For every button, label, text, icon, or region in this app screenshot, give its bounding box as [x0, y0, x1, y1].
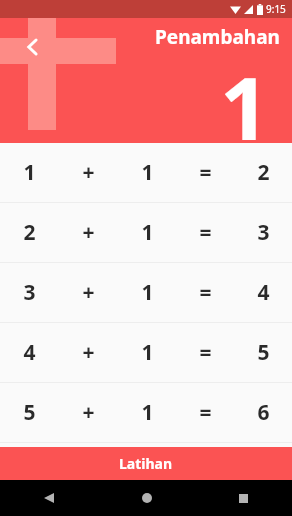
button[interactable]: 3 [0, 263, 292, 322]
staticText: Penambahan [155, 24, 280, 50]
staticText: 3 [23, 278, 36, 307]
staticText: 1 [23, 158, 36, 187]
staticText: 6 [257, 398, 270, 427]
staticText: 1 [220, 48, 270, 165]
button[interactable]: Recent apps [195, 480, 292, 516]
staticText: 1 [141, 278, 154, 307]
staticText: 1 [141, 218, 154, 247]
staticText: = [199, 278, 212, 307]
staticText: = [199, 338, 212, 367]
staticText: 5 [257, 338, 270, 367]
staticText: 9:15 [266, 2, 286, 16]
staticText: 1 [141, 338, 154, 367]
staticText: 4 [257, 278, 270, 307]
button[interactable]: Back [0, 480, 98, 516]
staticText: + [82, 398, 95, 427]
button[interactable]: 5 [0, 383, 292, 442]
staticText: = [199, 158, 212, 187]
staticText: 1 [141, 398, 154, 427]
staticText: 3 [257, 218, 270, 247]
staticText: + [82, 218, 95, 247]
staticText: 4 [23, 338, 36, 367]
button[interactable]: 2 [0, 203, 292, 262]
button[interactable]: Back [16, 30, 50, 64]
button[interactable]: Latihan [0, 447, 292, 480]
staticText: + [82, 338, 95, 367]
button[interactable]: Home [98, 480, 195, 516]
staticText: 2 [257, 158, 270, 187]
button[interactable]: 1 [0, 143, 292, 202]
staticText: Latihan [119, 454, 173, 473]
staticText: = [199, 398, 212, 427]
staticText: 2 [23, 218, 36, 247]
staticText: + [82, 158, 95, 187]
button[interactable]: 4 [0, 323, 292, 382]
staticText: 5 [23, 398, 36, 427]
staticText: + [82, 278, 95, 307]
staticText: = [199, 218, 212, 247]
staticText: 1 [141, 158, 154, 187]
